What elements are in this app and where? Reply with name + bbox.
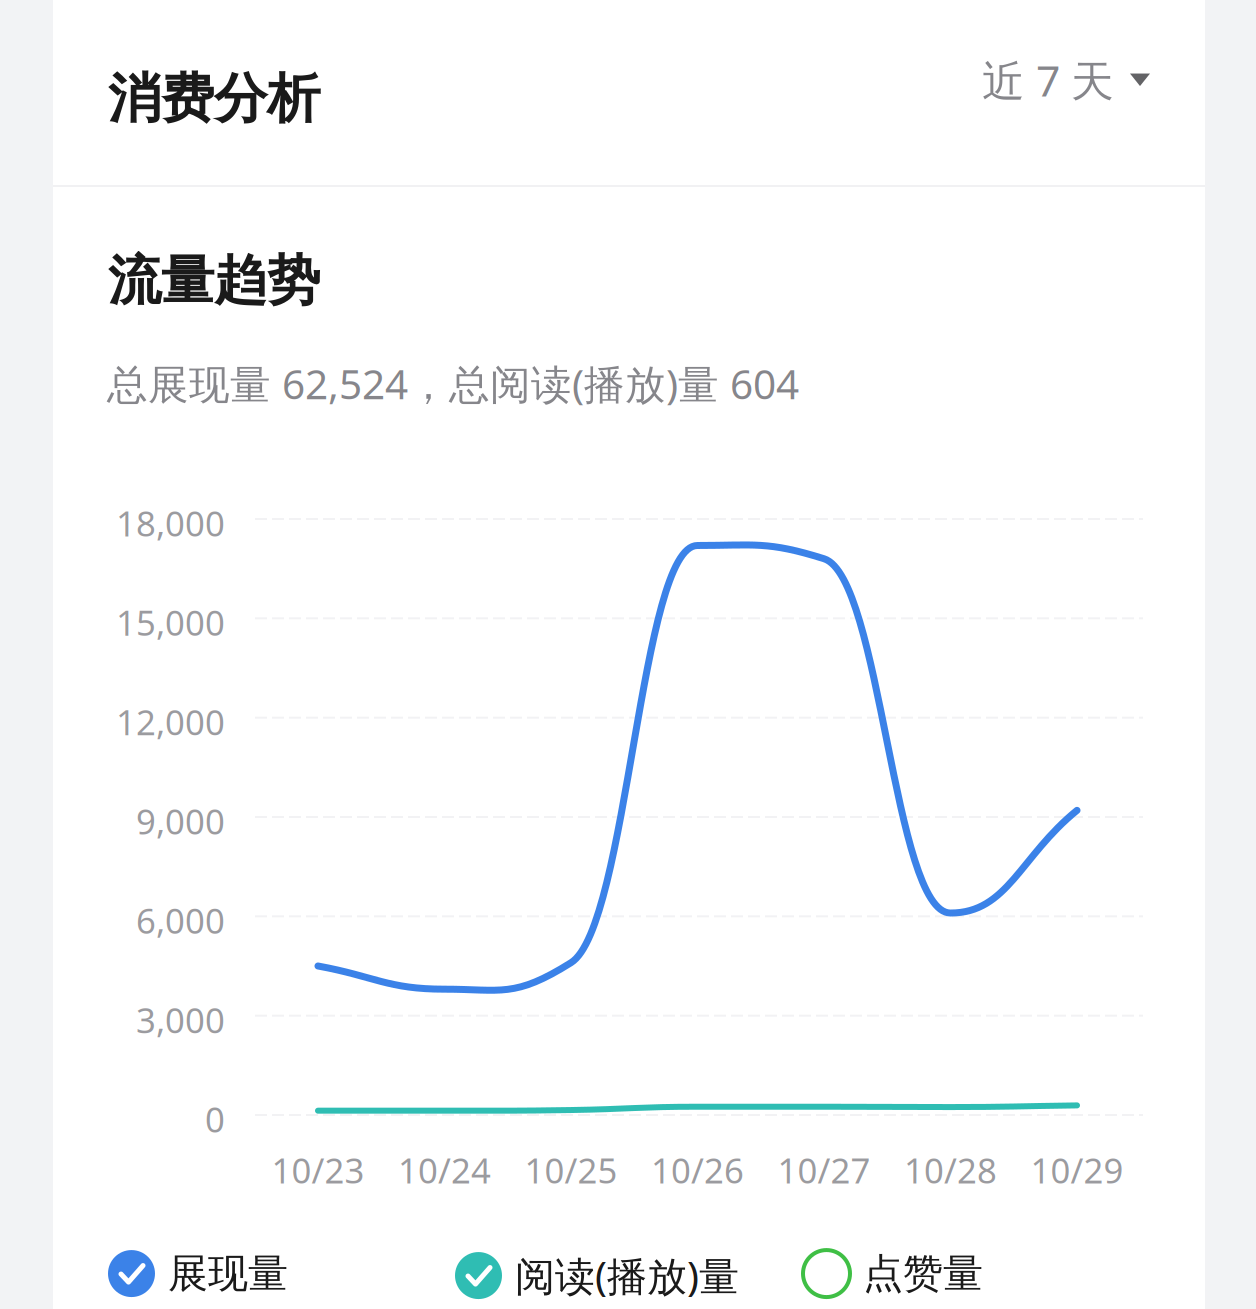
staticText: 12,000	[116, 699, 225, 745]
button[interactable]: 近 7 天	[968, 35, 1164, 125]
staticText: 0	[205, 1096, 225, 1142]
staticText: 10/24	[398, 1147, 491, 1193]
staticText: 阅读(播放)量	[515, 1249, 739, 1302]
staticText: 10/23	[271, 1147, 364, 1193]
staticText: 10/26	[651, 1147, 744, 1193]
staticText: 9,000	[136, 798, 225, 844]
staticText: 流量趋势	[108, 248, 320, 313]
staticText: 10/27	[777, 1147, 870, 1193]
staticText: 展现量	[168, 1249, 288, 1298]
staticText: 10/25	[524, 1147, 617, 1193]
button[interactable]: 点赞量	[803, 1249, 983, 1298]
staticText: 18,000	[116, 500, 225, 546]
staticText: 总展现量 62,524，总阅读(播放)量 604	[107, 356, 799, 411]
staticText: 3,000	[136, 997, 225, 1043]
staticText: 消费分析	[108, 66, 320, 131]
staticText: 点赞量	[863, 1249, 983, 1298]
staticText: 6,000	[136, 897, 225, 943]
button[interactable]: 展现量	[108, 1249, 288, 1298]
staticText: 10/28	[904, 1147, 997, 1193]
staticText: 10/29	[1030, 1147, 1123, 1193]
staticText: 15,000	[116, 599, 225, 645]
staticText: 近 7 天	[982, 51, 1114, 109]
button[interactable]: 阅读(播放)量	[455, 1249, 739, 1302]
